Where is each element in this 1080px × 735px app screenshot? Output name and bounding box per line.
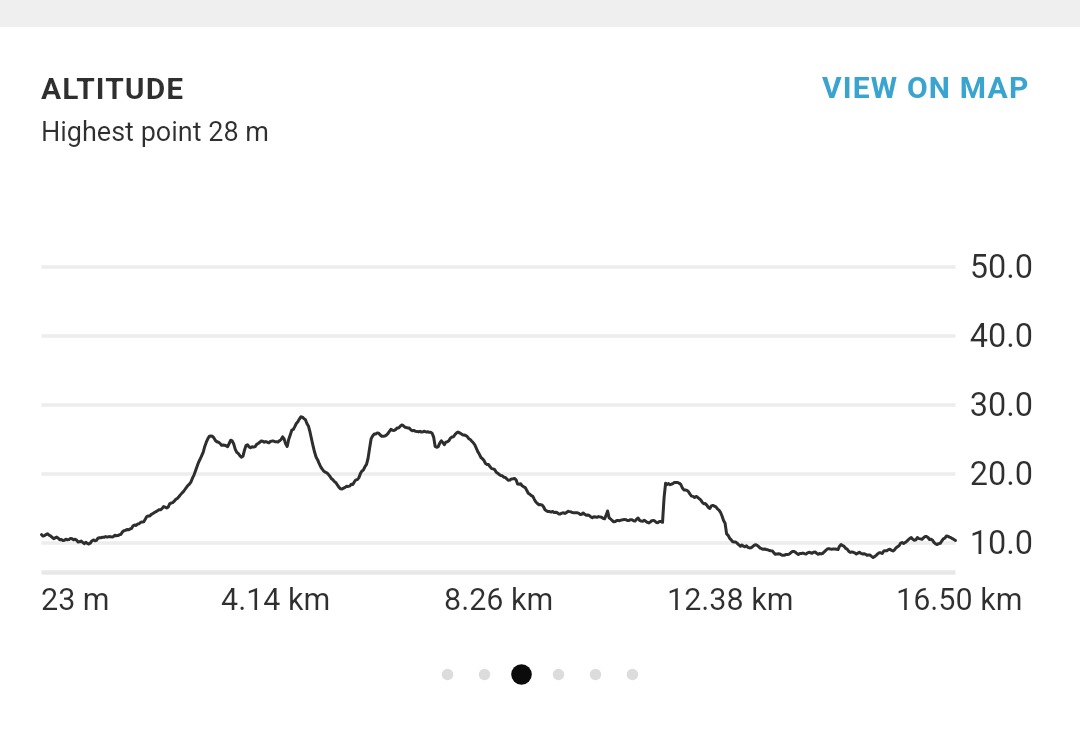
staticText: 40.0 bbox=[930, 317, 1033, 355]
staticText: 12.38 km bbox=[667, 582, 794, 618]
staticText: 10.0 bbox=[930, 524, 1033, 562]
button[interactable]: Page 2 bbox=[466, 656, 503, 693]
button[interactable]: Page 5 bbox=[577, 656, 614, 693]
staticText: VIEW ON MAP bbox=[822, 70, 1030, 105]
staticText: 50.0 bbox=[930, 248, 1033, 286]
staticText: 16.50 km bbox=[896, 582, 1023, 618]
staticText: 8.26 km bbox=[444, 582, 554, 618]
staticText: ALTITUDE bbox=[41, 71, 185, 106]
button[interactable]: VIEW ON MAP bbox=[806, 56, 1046, 119]
staticText: Highest point 28 m bbox=[41, 116, 269, 148]
button[interactable]: Page 1 bbox=[429, 656, 466, 693]
staticText: 23 m bbox=[41, 582, 110, 618]
button[interactable]: Page 6 bbox=[614, 656, 651, 693]
button[interactable]: Page 3 bbox=[503, 656, 540, 693]
staticText: 4.14 km bbox=[221, 582, 331, 618]
staticText: 20.0 bbox=[930, 455, 1033, 493]
staticText: 30.0 bbox=[930, 386, 1033, 424]
button[interactable]: Page 4 bbox=[540, 656, 577, 693]
